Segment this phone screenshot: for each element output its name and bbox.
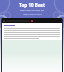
button[interactable]: Menu (3, 20, 5, 22)
staticText: Free Apps You Can Try (20, 9, 44, 12)
staticText: Top 10 Best (19, 2, 45, 8)
button[interactable]: Close (31, 20, 33, 22)
staticText: Right Now In 2024 (23, 13, 42, 16)
